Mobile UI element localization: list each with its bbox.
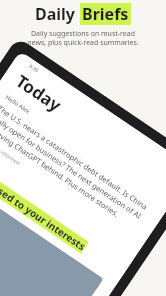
staticText: Hello Alex [4, 93, 31, 116]
staticText: 9:39 [27, 63, 39, 74]
staticText: Daily [35, 3, 80, 25]
staticText: Today [12, 69, 66, 116]
staticText: Daily suggestions on must-read news, plu… [27, 29, 139, 47]
staticText: The U.S. nears a catastrophic debt defau… [0, 103, 153, 232]
staticText: Briefs [82, 3, 129, 25]
staticText: Curated by informed [0, 134, 21, 167]
staticText: Personalised to your interests [0, 158, 89, 254]
